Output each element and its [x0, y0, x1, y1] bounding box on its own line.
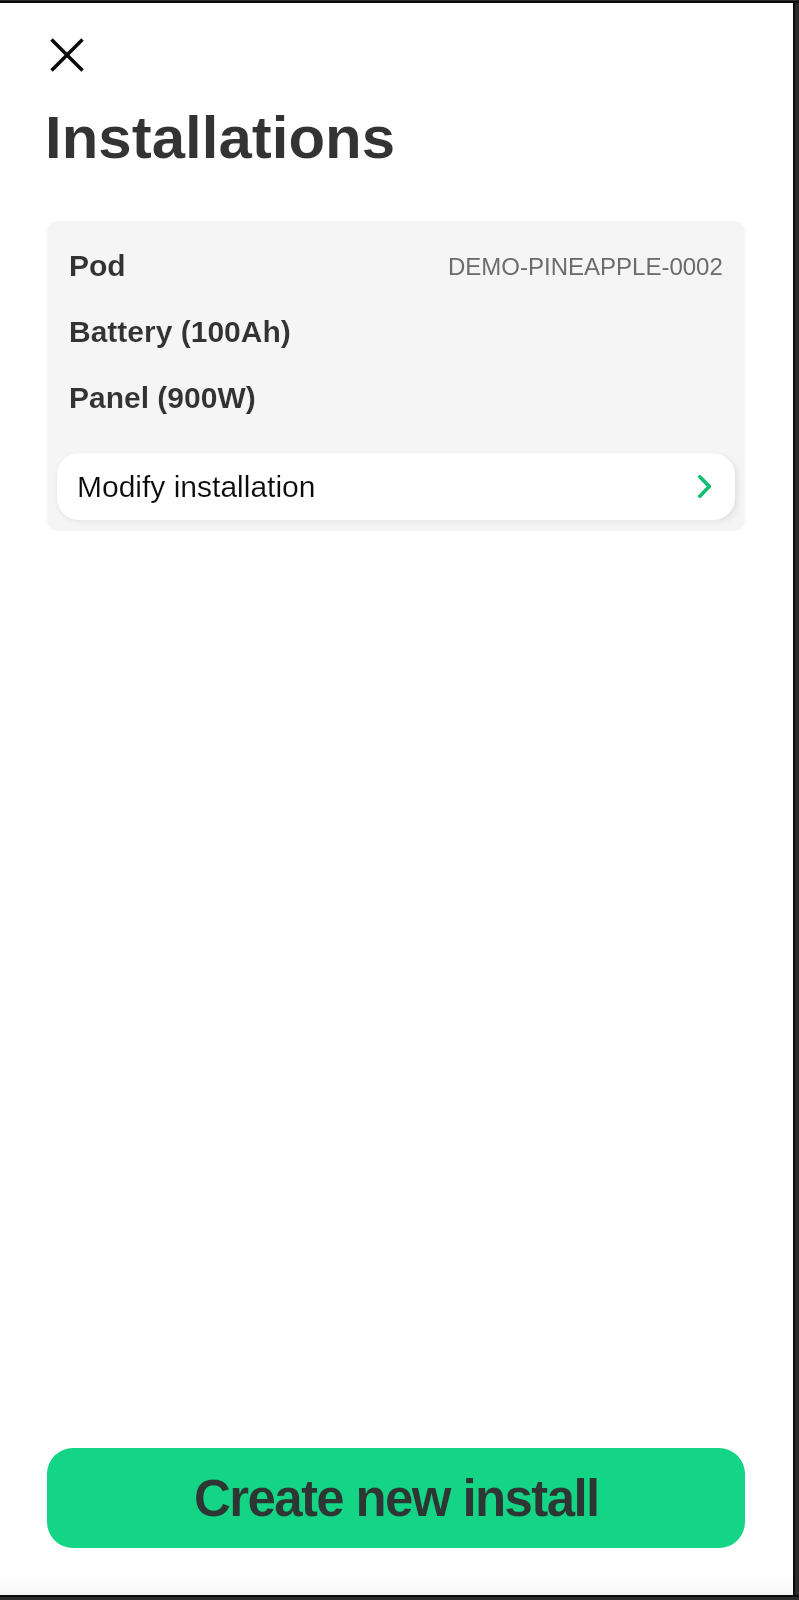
staticText: Installations: [45, 104, 396, 171]
staticText: Create new install: [194, 1470, 599, 1527]
staticText: Modify installation: [77, 470, 316, 504]
button[interactable]: Modify installation: [57, 453, 735, 520]
staticText: Pod: [69, 249, 126, 283]
button[interactable]: Create new install: [47, 1448, 745, 1548]
staticText: Battery (100Ah): [69, 315, 291, 349]
staticText: DEMO-PINEAPPLE-0002: [448, 253, 723, 280]
staticText: Panel (900W): [69, 381, 256, 415]
button[interactable]: Close: [42, 30, 91, 79]
